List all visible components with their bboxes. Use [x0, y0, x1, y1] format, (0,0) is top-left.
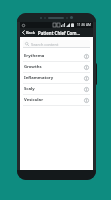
button[interactable]: More info about Scaly [83, 86, 89, 92]
button[interactable]: More info about Erythema [83, 53, 89, 59]
staticText: Patient Chief Com... [38, 30, 89, 36]
staticText: Growths [24, 64, 83, 70]
button[interactable]: Growths [20, 62, 93, 72]
button[interactable]: Search content [23, 40, 90, 48]
staticText: Vesicular [24, 97, 83, 103]
staticText: Scaly [24, 86, 83, 92]
button[interactable]: Back [20, 28, 38, 37]
button[interactable]: Inflammatory [20, 73, 93, 83]
staticText: Back [26, 30, 36, 35]
button[interactable]: Erythema [20, 51, 93, 61]
button[interactable]: Vesicular [20, 95, 93, 105]
staticText: Inflammatory [24, 75, 83, 81]
button[interactable]: More info about Growths [83, 64, 89, 70]
staticText: Erythema [24, 53, 83, 59]
button[interactable]: Scaly [20, 84, 93, 94]
button[interactable]: More info about Inflammatory [83, 75, 89, 81]
button[interactable]: More info about Vesicular [83, 97, 89, 103]
staticText: 11:36 AM [77, 23, 91, 27]
staticText: Search content [31, 42, 59, 47]
